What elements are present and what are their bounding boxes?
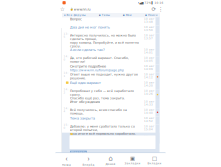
staticText: 10 авг 13:50	[144, 25, 154, 32]
staticText: пару команд. Попробуйте, и всё понятно с…	[70, 41, 139, 48]
staticText: ⋮	[158, 6, 163, 12]
staticText: 13:5	[63, 32, 68, 38]
staticText: 10 авг 14:33	[144, 100, 154, 106]
staticText: ›	[87, 154, 89, 163]
staticText: Попробовал у себя — всё заработало сразу…	[70, 89, 134, 96]
staticText: ▣	[130, 155, 135, 161]
button[interactable]: ⌂	[99, 154, 121, 166]
staticText: Спасибо ещё раз, тема закрыта.	[70, 96, 125, 100]
staticText: 10 авг 14:52	[144, 116, 154, 123]
staticText: 10 авг 14:40	[144, 108, 154, 114]
staticText: Последнее сообщение	[70, 135, 109, 139]
staticText: ▪ Мои	[123, 13, 132, 17]
button[interactable]: Ответить	[70, 151, 87, 154]
staticText: 10 авг 14:05	[144, 56, 154, 62]
staticText: но в итоге всё нормально заработало.	[70, 132, 136, 135]
staticText: Ответ выше не подходит, нужно другое реш…	[70, 73, 138, 80]
button[interactable]: Bookmark	[59, 6, 65, 12]
staticText: 10 авг 14:09	[144, 64, 154, 71]
staticText: Добавлю: у меня сработало только со втор…	[70, 125, 135, 132]
staticText: Итог обсуждения	[70, 100, 100, 104]
button[interactable]: □	[143, 155, 165, 165]
button[interactable]: Reload page	[150, 6, 156, 12]
staticText: Интересно получилось, но можно было сдел…	[70, 34, 136, 41]
staticText: 14:1	[63, 71, 68, 77]
staticText: 10 авг 13:48	[144, 17, 154, 23]
staticText: 10 авг 15:11	[144, 135, 154, 142]
staticText: А если сделать так?	[70, 48, 105, 52]
button[interactable]: ›	[77, 154, 99, 166]
staticText: Назад	[62, 163, 71, 166]
staticText: www.nn.ru	[73, 7, 90, 11]
button[interactable]: ▪ Мои	[123, 13, 132, 17]
staticText: ⌂	[108, 154, 112, 162]
staticText: 10 авг 14:01	[144, 48, 154, 54]
button[interactable]: ▣	[121, 155, 143, 165]
staticText: 10 авг 14:12	[144, 73, 154, 79]
staticText: Тема закрыта	[70, 116, 95, 120]
button[interactable]: ▪ Темы	[99, 13, 110, 17]
staticText: 10 авг 13:57	[144, 34, 154, 40]
button[interactable]: ≡ Все форумы	[63, 13, 85, 17]
staticText: 10 авг 15:04	[144, 125, 154, 131]
staticText: 14:2	[63, 88, 68, 94]
staticText: Вопрос	[70, 17, 82, 21]
staticText: 10 авг 14:26	[144, 89, 154, 95]
staticText: Домой	[105, 163, 115, 166]
staticText: ⟳	[151, 6, 155, 12]
button[interactable]: ‹	[55, 154, 77, 166]
staticText: 14:0	[63, 55, 68, 61]
staticText: ▪ Поиск	[145, 13, 158, 17]
staticText: ‹	[65, 154, 67, 163]
staticText: Закладки	[124, 162, 140, 165]
staticText: 10 авг 14:20	[144, 81, 154, 87]
staticText: https://www.nn.ru/forum/page.php	[70, 68, 124, 72]
staticText: 15:0	[63, 123, 68, 129]
staticText: ▪ Темы	[99, 13, 110, 17]
staticText: Вперёд	[82, 163, 94, 166]
staticText: Ещё один вариант	[70, 81, 101, 85]
staticText: ≡ Все форумы	[63, 13, 85, 17]
staticText: ▾ ▄▆ 72%▌ 10:16	[137, 1, 163, 4]
staticText: Смотрите подробнее	[70, 64, 106, 68]
staticText: 🔒	[69, 8, 72, 11]
staticText: Да, это рабочий вариант. Спасибо, помогл…	[70, 56, 129, 63]
staticText: Всё получилось, всем спасибо за помощь.	[70, 108, 127, 115]
staticText: □	[152, 155, 157, 161]
button[interactable]: More options	[158, 6, 162, 12]
staticText: Два дня не мог понять	[70, 25, 110, 29]
staticText: Ответить	[70, 151, 86, 154]
staticText: 14:4	[63, 107, 68, 113]
staticText: Вкладки	[147, 162, 161, 165]
staticText: ☆	[60, 6, 65, 12]
button[interactable]: ▪ Поиск	[145, 13, 158, 17]
